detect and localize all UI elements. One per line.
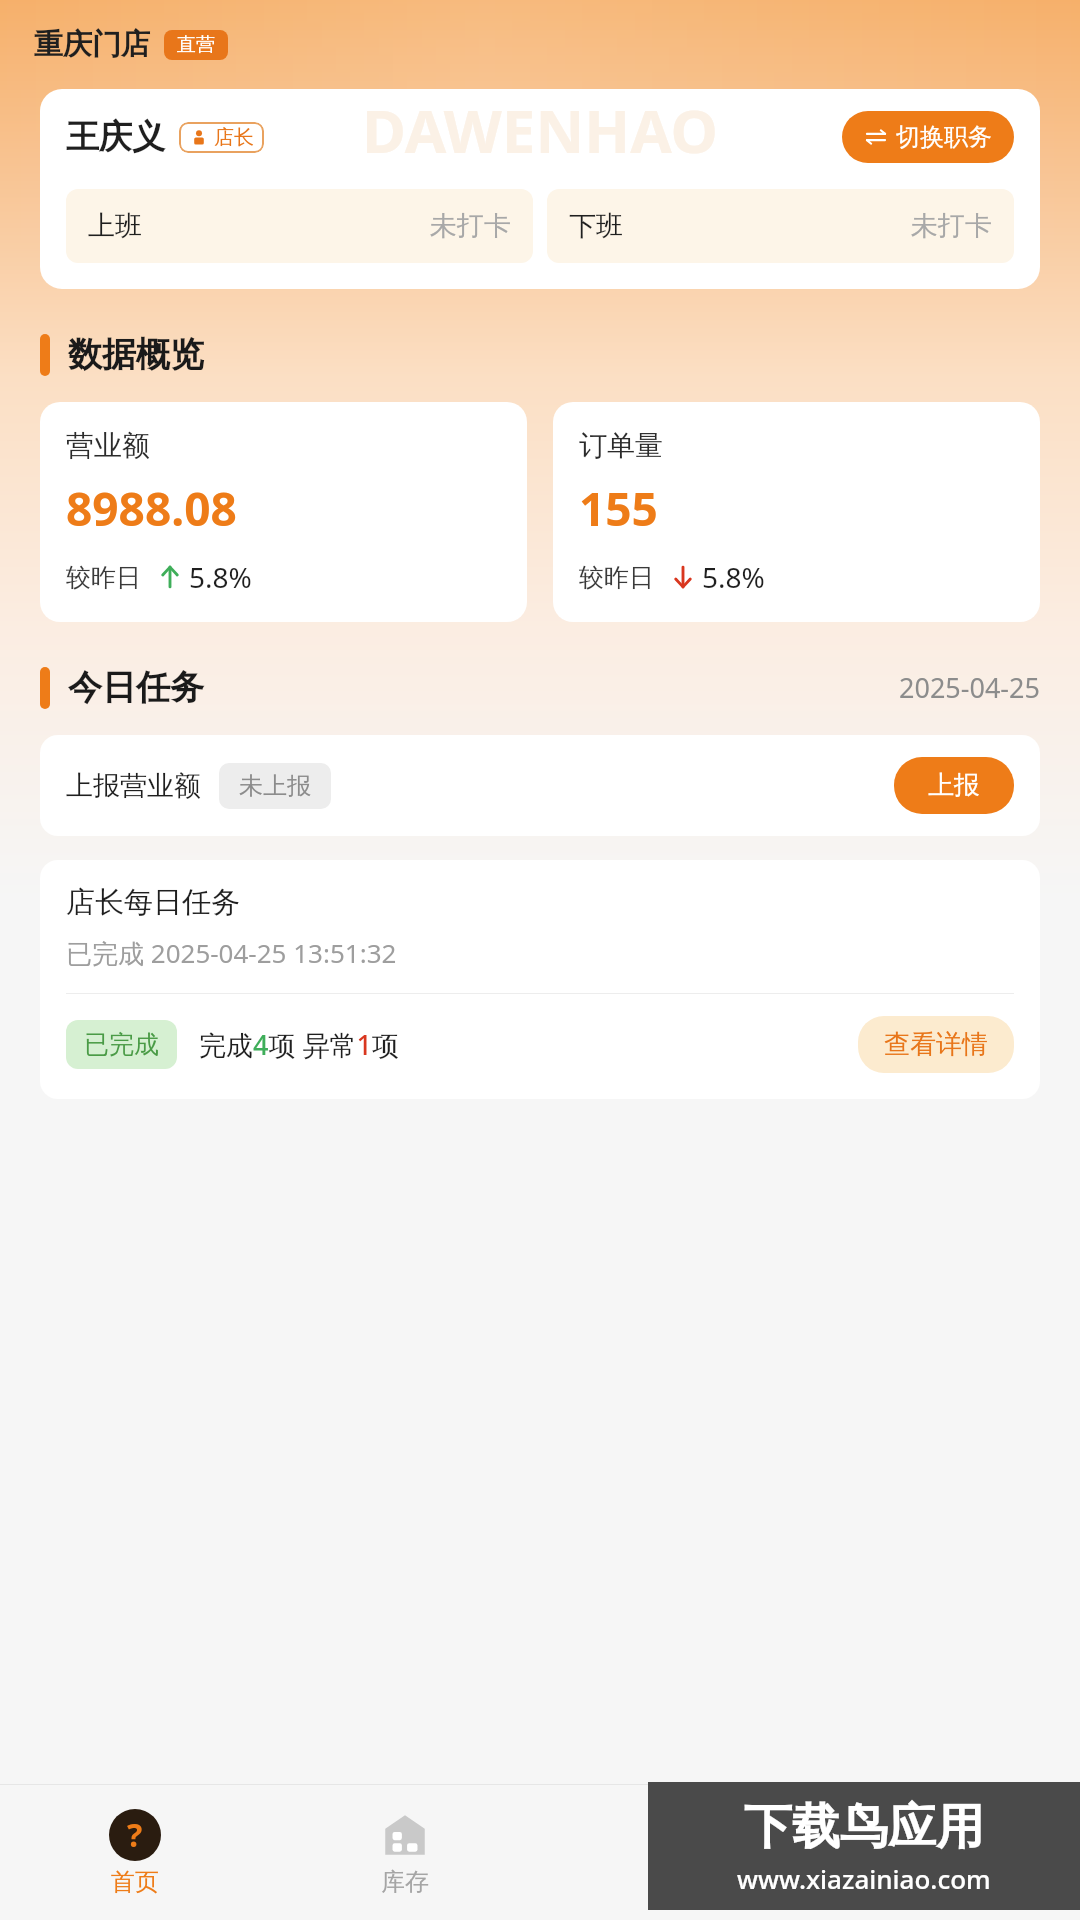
button[interactable]: 店长每日任务	[40, 860, 1040, 1099]
staticText: 今日任务	[68, 666, 204, 709]
staticText: 较昨日	[66, 562, 141, 593]
staticText: 首页	[111, 1867, 159, 1897]
staticText: 较昨日	[579, 562, 654, 593]
staticText: 店长每日任务	[66, 884, 240, 921]
staticText: 已完成 2025-04-25 13:51:32	[66, 935, 397, 971]
staticText: ?	[127, 1813, 143, 1857]
staticText: www.xiazainiao.com	[737, 1861, 991, 1896]
staticText: 数据概览	[68, 333, 204, 376]
button[interactable]: 上班	[66, 189, 533, 263]
button[interactable]: 营业额	[40, 402, 527, 622]
staticText: 订单量	[579, 428, 663, 463]
staticText: 切换职务	[896, 122, 992, 152]
button[interactable]: 库存	[270, 1799, 540, 1907]
staticText: 上报	[928, 769, 980, 802]
staticText: 已完成	[84, 1029, 159, 1060]
button[interactable]: 订单量	[553, 402, 1040, 622]
staticText: 8988.08	[66, 477, 237, 540]
staticText: 未上报	[239, 771, 311, 801]
staticText: 店长	[214, 125, 254, 150]
staticText: 5.8%	[702, 558, 765, 596]
staticText: 重庆门店	[34, 26, 150, 63]
button[interactable]: 上报营业额	[40, 735, 1040, 836]
staticText: 查看详情	[884, 1028, 988, 1061]
staticText: 5.8%	[189, 558, 252, 596]
button[interactable]: 下班	[547, 189, 1014, 263]
staticText: 下载鸟应用	[744, 1797, 984, 1857]
staticText: 2025-04-25	[899, 669, 1040, 706]
staticText: 上班	[88, 209, 142, 243]
staticText: 营业额	[66, 428, 150, 463]
button[interactable]: ?	[0, 1799, 270, 1907]
button[interactable]: 切换职务	[842, 111, 1014, 163]
staticText: 下班	[569, 209, 623, 243]
staticText: 未打卡	[911, 209, 992, 243]
button[interactable]: 上报	[894, 757, 1014, 814]
staticText: 库存	[381, 1867, 429, 1897]
staticText: DAWENHAO	[362, 89, 718, 159]
button[interactable]: 查看详情	[858, 1016, 1014, 1073]
staticText: 王庆义	[66, 116, 165, 158]
staticText: 未打卡	[430, 209, 511, 243]
staticText: 上报营业额	[66, 769, 201, 803]
staticText: 155	[579, 477, 658, 540]
staticText: 完成4项 异常1项	[199, 1026, 399, 1063]
staticText: 直营	[177, 33, 215, 57]
